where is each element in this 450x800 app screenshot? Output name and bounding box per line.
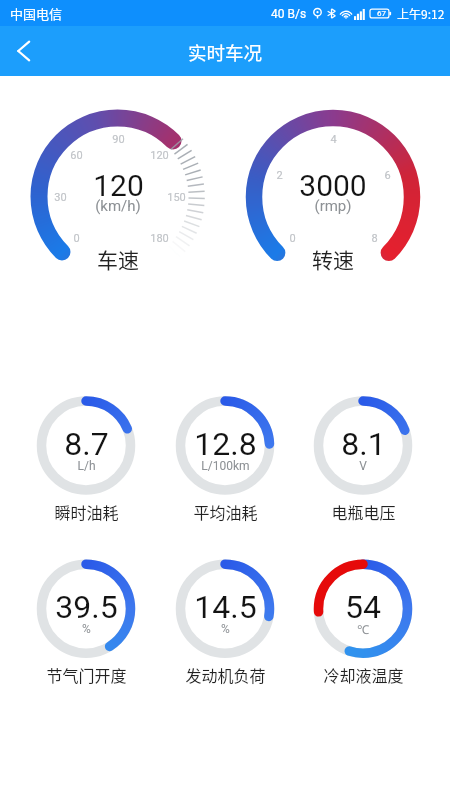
staticText: 上午9:12 bbox=[397, 5, 445, 22]
staticText: 2 bbox=[276, 169, 283, 182]
staticText: 实时车况 bbox=[188, 39, 263, 66]
staticText: 电瓶电压 bbox=[331, 500, 396, 523]
button[interactable] bbox=[36, 559, 136, 659]
staticText: 40 B/s bbox=[271, 7, 307, 21]
staticText: 54 bbox=[345, 588, 381, 620]
staticText: 120 bbox=[150, 149, 169, 162]
staticText: 转速 bbox=[312, 244, 354, 274]
staticText: 67 bbox=[377, 9, 386, 18]
staticText: 120 bbox=[93, 168, 144, 200]
staticText: V bbox=[359, 459, 367, 473]
staticText: 8.1 bbox=[341, 425, 386, 457]
staticText: 8.7 bbox=[64, 425, 109, 457]
staticText: (km/h) bbox=[95, 197, 141, 215]
staticText: 发动机负荷 bbox=[185, 663, 266, 686]
staticText: L/h bbox=[77, 459, 96, 473]
button[interactable]: Back bbox=[0, 27, 48, 75]
staticText: 中国电信 bbox=[10, 4, 63, 23]
staticText: % bbox=[221, 622, 230, 636]
staticText: 8 bbox=[371, 232, 378, 245]
staticText: (rmp) bbox=[314, 197, 352, 215]
staticText: 0 bbox=[73, 232, 80, 245]
staticText: 3000 bbox=[299, 168, 367, 200]
staticText: 0 bbox=[289, 232, 296, 245]
staticText: 冷却液温度 bbox=[323, 663, 404, 686]
button[interactable] bbox=[36, 396, 136, 496]
staticText: 60 bbox=[70, 149, 83, 162]
staticText: 12.8 bbox=[194, 425, 257, 457]
staticText: 150 bbox=[167, 191, 186, 204]
staticText: 4 bbox=[330, 133, 337, 146]
button[interactable] bbox=[313, 396, 413, 496]
staticText: 14.5 bbox=[194, 588, 257, 620]
staticText: L/100km bbox=[201, 459, 250, 473]
staticText: 39.5 bbox=[55, 588, 118, 620]
staticText: 90 bbox=[112, 133, 125, 146]
staticText: 6 bbox=[384, 169, 391, 182]
staticText: 节气门开度 bbox=[46, 663, 127, 686]
staticText: ℃ bbox=[357, 621, 369, 637]
button[interactable] bbox=[313, 559, 413, 659]
staticText: 车速 bbox=[97, 244, 139, 274]
staticText: 平均油耗 bbox=[193, 500, 258, 523]
staticText: 30 bbox=[54, 191, 67, 204]
button[interactable] bbox=[175, 396, 275, 496]
staticText: 180 bbox=[150, 232, 169, 245]
staticText: 瞬时油耗 bbox=[54, 500, 119, 523]
staticText: % bbox=[82, 622, 91, 636]
button[interactable] bbox=[175, 559, 275, 659]
